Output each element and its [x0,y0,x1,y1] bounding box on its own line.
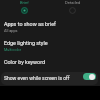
button[interactable]: Show even while screen is off toggle [83,73,96,80]
staticText: Multicolor [4,47,22,51]
button[interactable]: Detailed [48,0,97,17]
staticText: Apps to show as brief [4,21,56,27]
staticText: Color by keyword [4,59,46,65]
staticText: Show even while screen is off [4,75,70,81]
staticText: Detailed [65,0,81,5]
button[interactable]: Show even while screen is off [1,72,98,85]
staticText: Brief [20,0,29,5]
button[interactable]: Apps to show as brief [0,20,100,33]
staticText: All apps [4,28,18,32]
button[interactable]: Edge lighting style [0,39,100,52]
staticText: Edge lighting style [4,40,48,46]
button[interactable]: Color by keyword [0,58,100,66]
button[interactable]: Brief [1,0,47,17]
